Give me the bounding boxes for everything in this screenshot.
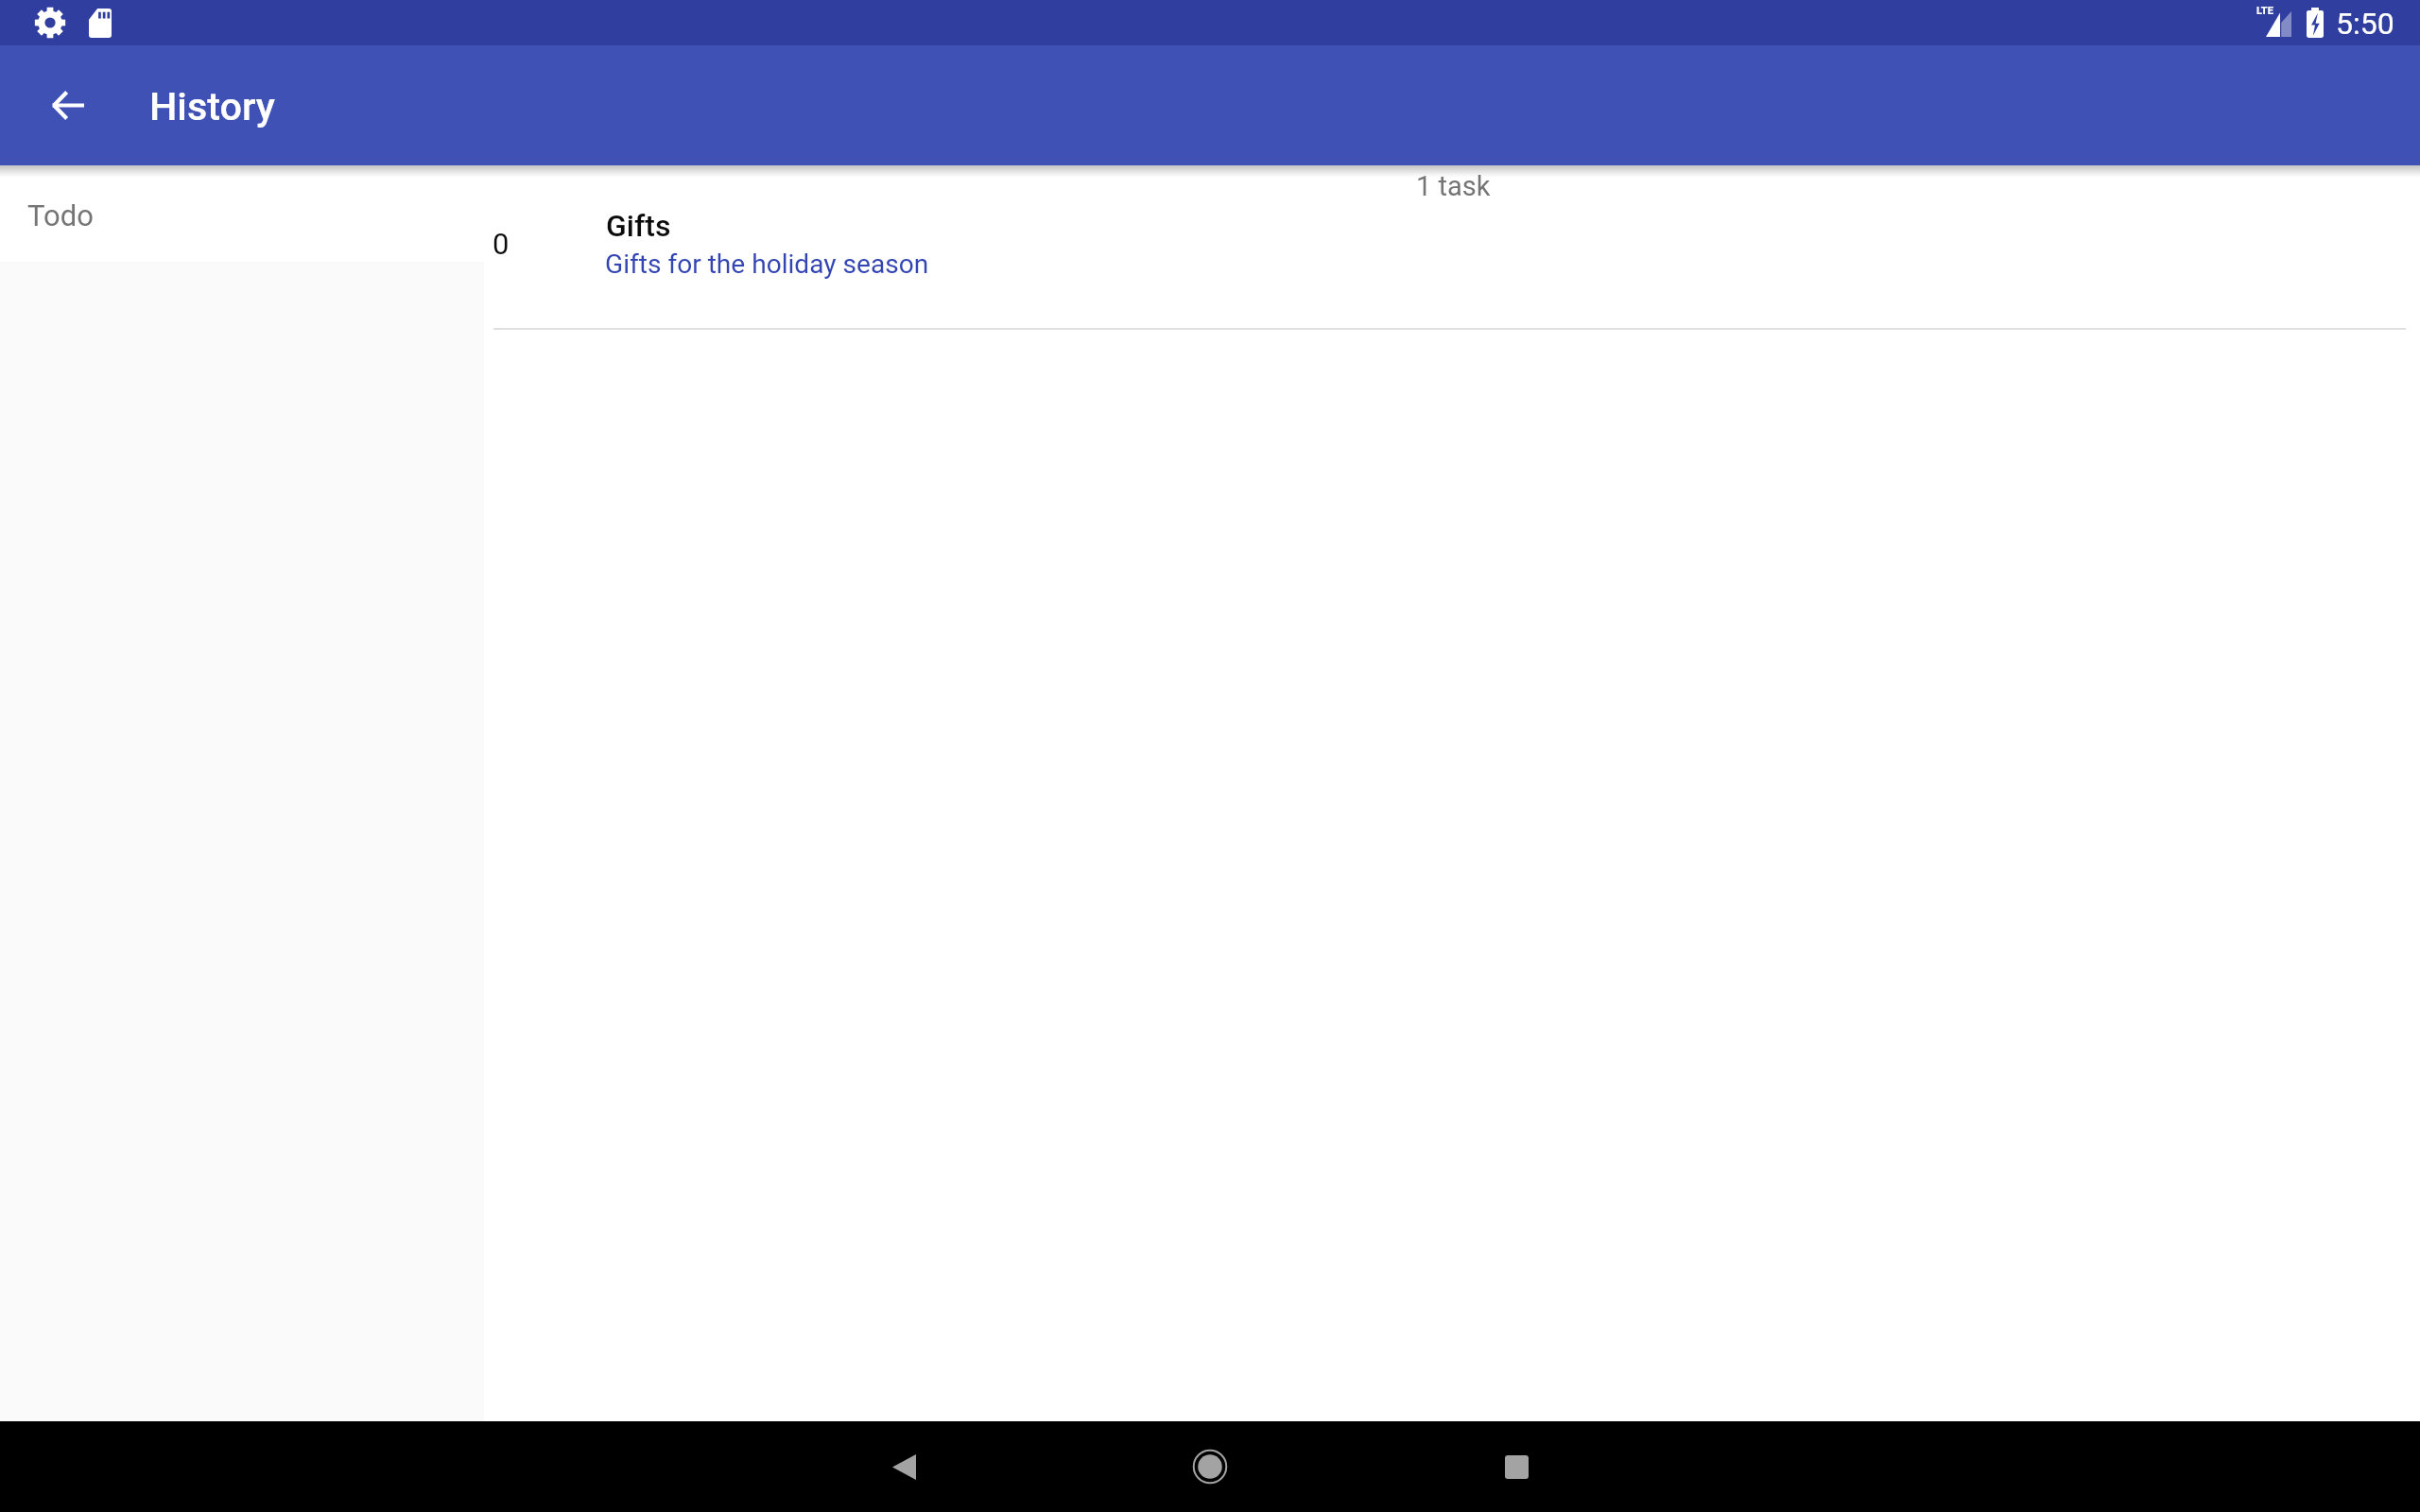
button[interactable]: Back bbox=[836, 1421, 972, 1512]
staticText: Gifts for the holiday season bbox=[605, 249, 929, 280]
button[interactable]: Back bbox=[25, 61, 112, 148]
staticText: 1 task bbox=[1416, 170, 1491, 202]
other: Settings bbox=[34, 7, 66, 39]
staticText: Todo bbox=[27, 198, 94, 232]
button[interactable]: Recent apps bbox=[1448, 1421, 1584, 1512]
staticText: LTE bbox=[2256, 5, 2273, 17]
button[interactable]: Home bbox=[1142, 1421, 1278, 1512]
staticText: 5:50 bbox=[2336, 6, 2394, 42]
staticText: History bbox=[149, 84, 275, 129]
staticText: Gifts bbox=[606, 208, 671, 244]
button[interactable]: Todo bbox=[0, 165, 484, 262]
button[interactable]: 0 bbox=[484, 165, 2420, 330]
staticText: 0 bbox=[493, 227, 510, 261]
